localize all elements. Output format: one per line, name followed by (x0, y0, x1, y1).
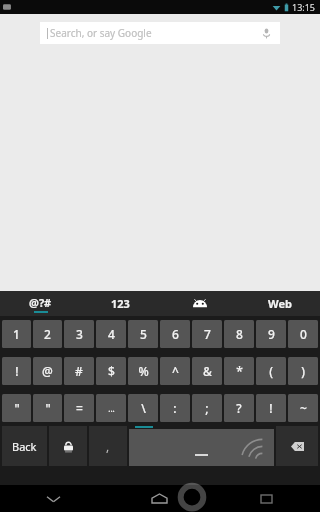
button[interactable]: * (224, 357, 254, 385)
button[interactable]: $ (96, 357, 126, 385)
staticText: * (236, 363, 243, 379)
button[interactable]: " (2, 394, 31, 422)
button[interactable]: , (89, 426, 127, 466)
button[interactable]: ? (224, 394, 254, 422)
staticText: ) (301, 363, 305, 379)
staticText: 7 (204, 326, 211, 342)
button[interactable]: Emoji (160, 291, 240, 316)
staticText: ~ (300, 400, 307, 416)
button[interactable]: ~ (288, 394, 318, 422)
staticText: Back (12, 439, 37, 454)
button[interactable]: Caps lock (49, 426, 87, 466)
staticText: 123 (111, 296, 130, 311)
staticText: ! (15, 363, 19, 379)
staticText: ( (269, 363, 273, 379)
button[interactable]: : (160, 394, 190, 422)
staticText: 4 (108, 326, 115, 342)
staticText: , (106, 438, 110, 454)
staticText: Search, or say Google (50, 26, 258, 40)
button[interactable]: Recent apps (213, 485, 320, 512)
button[interactable]: ; (192, 394, 222, 422)
button[interactable]: Search, or say Google (40, 22, 280, 44)
staticText: " (45, 400, 51, 416)
button[interactable]: 7 (192, 320, 222, 348)
button[interactable]: ^ (160, 357, 190, 385)
staticText: Web (268, 296, 292, 311)
button[interactable]: Delete (276, 426, 318, 466)
button[interactable]: Space (129, 426, 274, 466)
staticText: ; (205, 400, 209, 416)
button[interactable]: 6 (160, 320, 190, 348)
button[interactable]: 0 (288, 320, 318, 348)
staticText: ! (269, 400, 273, 416)
button[interactable]: Hide keyboard (0, 485, 106, 512)
staticText: 9 (268, 326, 275, 342)
staticText: = (76, 400, 83, 416)
button[interactable]: Voice search (258, 25, 274, 41)
button[interactable]: 123 (80, 291, 160, 316)
button[interactable]: Home (106, 485, 213, 512)
staticText: " (14, 400, 20, 416)
staticText: 0 (300, 326, 307, 342)
staticText: ? (236, 400, 242, 416)
button[interactable]: Web (240, 291, 320, 316)
button[interactable]: @ (33, 357, 62, 385)
button[interactable]: 1 (2, 320, 31, 348)
staticText: 3 (76, 326, 83, 342)
staticText: $ (108, 363, 115, 379)
button[interactable]: 9 (256, 320, 286, 348)
staticText: 2 (44, 326, 51, 342)
staticText: 6 (172, 326, 179, 342)
button[interactable]: 4 (96, 320, 126, 348)
button[interactable]: # (64, 357, 94, 385)
button[interactable]: 5 (128, 320, 158, 348)
staticText: ^ (172, 363, 179, 379)
button[interactable]: % (128, 357, 158, 385)
staticText: @?# (29, 295, 52, 310)
staticText: & (203, 363, 212, 379)
button[interactable]: ! (256, 394, 286, 422)
button[interactable]: ) (288, 357, 318, 385)
staticText: ... (108, 403, 115, 414)
staticText: \ (141, 400, 146, 416)
button[interactable]: \ (128, 394, 158, 422)
staticText: 5 (140, 326, 147, 342)
button[interactable]: & (192, 357, 222, 385)
button[interactable]: Back (2, 426, 47, 466)
button[interactable]: = (64, 394, 94, 422)
button[interactable]: 2 (33, 320, 62, 348)
button[interactable]: @?# (0, 291, 80, 316)
button[interactable]: ( (256, 357, 286, 385)
button[interactable]: " (33, 394, 62, 422)
button[interactable]: ! (2, 357, 31, 385)
button[interactable]: ... (96, 394, 126, 422)
staticText: # (75, 363, 83, 379)
staticText: % (138, 363, 149, 379)
staticText: 8 (236, 326, 243, 342)
staticText: : (173, 400, 177, 416)
button[interactable]: 8 (224, 320, 254, 348)
staticText: 13:15 (292, 1, 316, 13)
staticText: @ (42, 363, 53, 379)
button[interactable]: 3 (64, 320, 94, 348)
staticText: 1 (13, 326, 20, 342)
